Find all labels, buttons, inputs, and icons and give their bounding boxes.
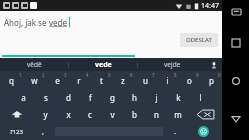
button[interactable]: ODESLAT xyxy=(180,33,218,47)
staticText: a xyxy=(21,92,26,103)
staticText: w xyxy=(31,75,38,86)
button[interactable]: p xyxy=(200,71,222,89)
staticText: Ahoj, jak se xyxy=(4,17,49,28)
staticText: i xyxy=(166,75,169,86)
button[interactable]: m xyxy=(167,106,189,123)
staticText: 1 xyxy=(19,72,22,78)
staticText: b xyxy=(132,109,137,120)
staticText: ?123 xyxy=(10,128,23,136)
button[interactable]: . xyxy=(165,123,185,140)
button[interactable]: vejde xyxy=(138,58,206,71)
staticText: vědě xyxy=(27,60,42,69)
button[interactable]: o xyxy=(178,71,200,89)
button[interactable]: x xyxy=(57,106,79,123)
staticText: ODESLAT xyxy=(186,36,212,44)
staticText: q xyxy=(9,75,14,86)
button[interactable]: i xyxy=(156,71,178,89)
staticText: 5 xyxy=(108,72,111,78)
staticText: 7 xyxy=(152,72,155,78)
staticText: g xyxy=(110,92,115,103)
button[interactable]: y xyxy=(34,106,57,123)
staticText: vede xyxy=(49,17,68,28)
button[interactable]: Keyboard switcher xyxy=(229,5,243,19)
button[interactable]: z xyxy=(112,71,134,89)
staticText: t xyxy=(100,75,103,86)
staticText: o xyxy=(187,75,192,86)
button[interactable]: c xyxy=(79,106,101,123)
button[interactable]: e xyxy=(46,71,68,89)
staticText: u xyxy=(143,75,148,86)
staticText: h xyxy=(132,92,137,103)
button[interactable]: Shift xyxy=(0,106,34,123)
button[interactable]: s xyxy=(35,89,57,106)
staticText: k xyxy=(176,92,181,103)
staticText: r xyxy=(77,75,81,86)
staticText: 4 xyxy=(86,72,89,78)
staticText: m xyxy=(174,109,182,120)
staticText: vede xyxy=(95,60,112,70)
button[interactable]: j xyxy=(145,89,167,106)
button[interactable]: vědě xyxy=(0,58,68,71)
button[interactable]: t xyxy=(90,71,112,89)
button[interactable]: ?123 xyxy=(0,123,33,140)
staticText: y xyxy=(43,109,48,120)
button[interactable]: Emoji xyxy=(198,126,209,137)
button[interactable]: Back xyxy=(228,111,244,127)
staticText: c xyxy=(88,109,92,120)
button[interactable]: n xyxy=(145,106,167,123)
staticText: 6 xyxy=(130,72,133,78)
button[interactable]: Home xyxy=(228,73,244,89)
button[interactable]: , xyxy=(33,123,53,140)
button[interactable]: f xyxy=(79,89,101,106)
button[interactable]: w xyxy=(23,71,46,89)
button[interactable]: v xyxy=(101,106,123,123)
staticText: 8 xyxy=(174,72,177,78)
button[interactable]: u xyxy=(134,71,156,89)
button[interactable]: d xyxy=(57,89,79,106)
staticText: 0 xyxy=(218,72,221,78)
button[interactable]: l xyxy=(189,89,211,106)
staticText: , xyxy=(42,127,44,137)
button[interactable]: Voice input xyxy=(206,58,222,71)
staticText: 9 xyxy=(196,72,199,78)
staticText: x xyxy=(66,109,71,120)
staticText: z xyxy=(121,75,125,86)
button[interactable]: vede xyxy=(69,58,137,71)
button[interactable]: Backspace xyxy=(189,106,222,123)
staticText: p xyxy=(209,75,214,86)
staticText: e xyxy=(55,75,60,86)
staticText: f xyxy=(89,92,92,103)
staticText: s xyxy=(44,92,48,103)
button[interactable]: g xyxy=(101,89,123,106)
staticText: vejde xyxy=(164,60,181,69)
staticText: v xyxy=(110,109,115,120)
staticText: j xyxy=(155,92,158,103)
button[interactable]: Recents xyxy=(228,35,244,51)
staticText: 14:47 xyxy=(201,1,219,11)
staticText: 3 xyxy=(64,72,67,78)
button[interactable]: h xyxy=(123,89,145,106)
staticText: n xyxy=(154,109,159,120)
button[interactable]: b xyxy=(123,106,145,123)
staticText: l xyxy=(199,92,202,103)
staticText: 2 xyxy=(42,72,45,78)
button[interactable]: r xyxy=(68,71,90,89)
staticText: d xyxy=(66,92,71,103)
staticText: . xyxy=(174,127,176,137)
button[interactable]: k xyxy=(167,89,189,106)
button[interactable]: a xyxy=(12,89,35,106)
button[interactable]: q xyxy=(0,71,23,89)
